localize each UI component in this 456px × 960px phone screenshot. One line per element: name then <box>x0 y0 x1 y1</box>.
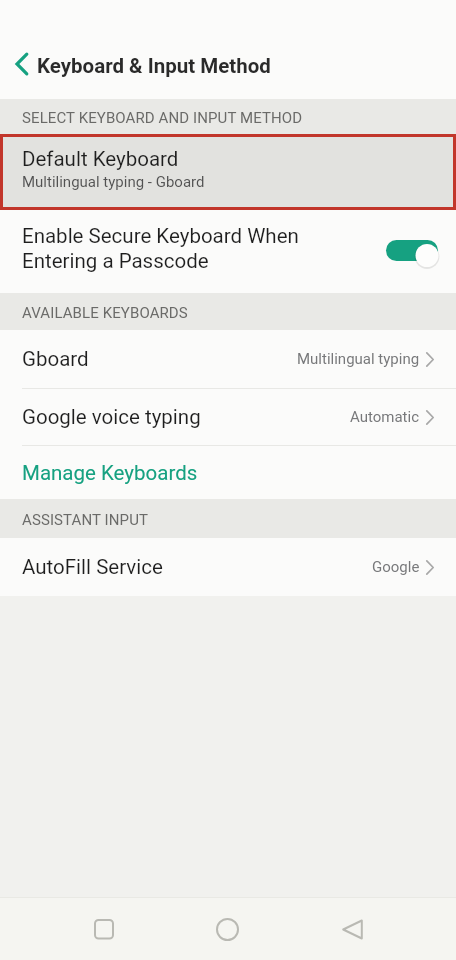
staticText: Google <box>372 558 420 576</box>
button[interactable]: Enable Secure Keyboard When <box>0 210 456 293</box>
staticText: Default Keyboard <box>22 147 179 171</box>
button[interactable] <box>340 917 365 942</box>
staticText: Manage Keyboards <box>22 461 198 485</box>
button[interactable]: Gboard <box>0 330 456 388</box>
staticText: Google voice typing <box>22 405 201 429</box>
staticText: Entering a Passcode <box>22 249 209 273</box>
staticText: Automatic <box>350 408 420 426</box>
button[interactable] <box>215 917 240 942</box>
button[interactable] <box>92 920 116 944</box>
staticText: Gboard <box>22 347 89 371</box>
staticText: SELECT KEYBOARD AND INPUT METHOD <box>22 109 303 127</box>
button[interactable]: Default Keyboard <box>0 134 456 210</box>
staticText: ASSISTANT INPUT <box>22 511 149 529</box>
staticText: AutoFill Service <box>22 555 163 579</box>
button[interactable]: Keyboard & Input Method <box>14 54 271 78</box>
button[interactable]: AutoFill Service <box>0 538 456 596</box>
staticText: Multilingual typing - Gboard <box>22 173 205 191</box>
staticText: AVAILABLE KEYBOARDS <box>22 304 188 322</box>
staticText: Multilingual typing <box>297 350 420 368</box>
staticText: Enable Secure Keyboard When <box>22 224 299 248</box>
button[interactable]: Google voice typing <box>0 389 456 445</box>
staticText: Keyboard & Input Method <box>37 54 271 78</box>
button[interactable]: Manage Keyboards <box>0 446 456 499</box>
